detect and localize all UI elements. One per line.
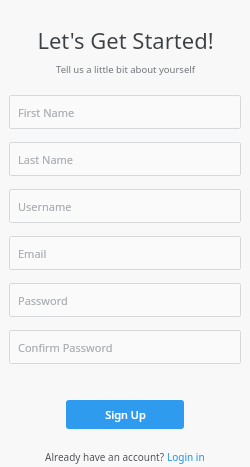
staticText: Last Name	[18, 152, 74, 167]
button[interactable]: Login in	[167, 450, 205, 464]
staticText: Password	[18, 293, 68, 308]
button[interactable]: Last Name	[9, 142, 241, 176]
staticText: Already have an account?	[45, 450, 167, 464]
staticText: Username	[18, 199, 72, 214]
staticText: Let's Get Started!	[37, 25, 214, 55]
button[interactable]: Email	[9, 236, 241, 270]
staticText: Confirm Password	[18, 340, 113, 355]
button[interactable]: First Name	[9, 95, 241, 129]
staticText: First Name	[18, 105, 75, 120]
staticText: Sign Up	[105, 407, 146, 422]
staticText: Login in	[167, 450, 205, 464]
button[interactable]: Confirm Password	[9, 330, 241, 364]
staticText: Email	[18, 246, 47, 261]
button[interactable]: Username	[9, 189, 241, 223]
staticText: Tell us a little bit about yourself	[56, 63, 195, 76]
button[interactable]: Sign Up	[66, 400, 184, 429]
button[interactable]: Password	[9, 283, 241, 317]
